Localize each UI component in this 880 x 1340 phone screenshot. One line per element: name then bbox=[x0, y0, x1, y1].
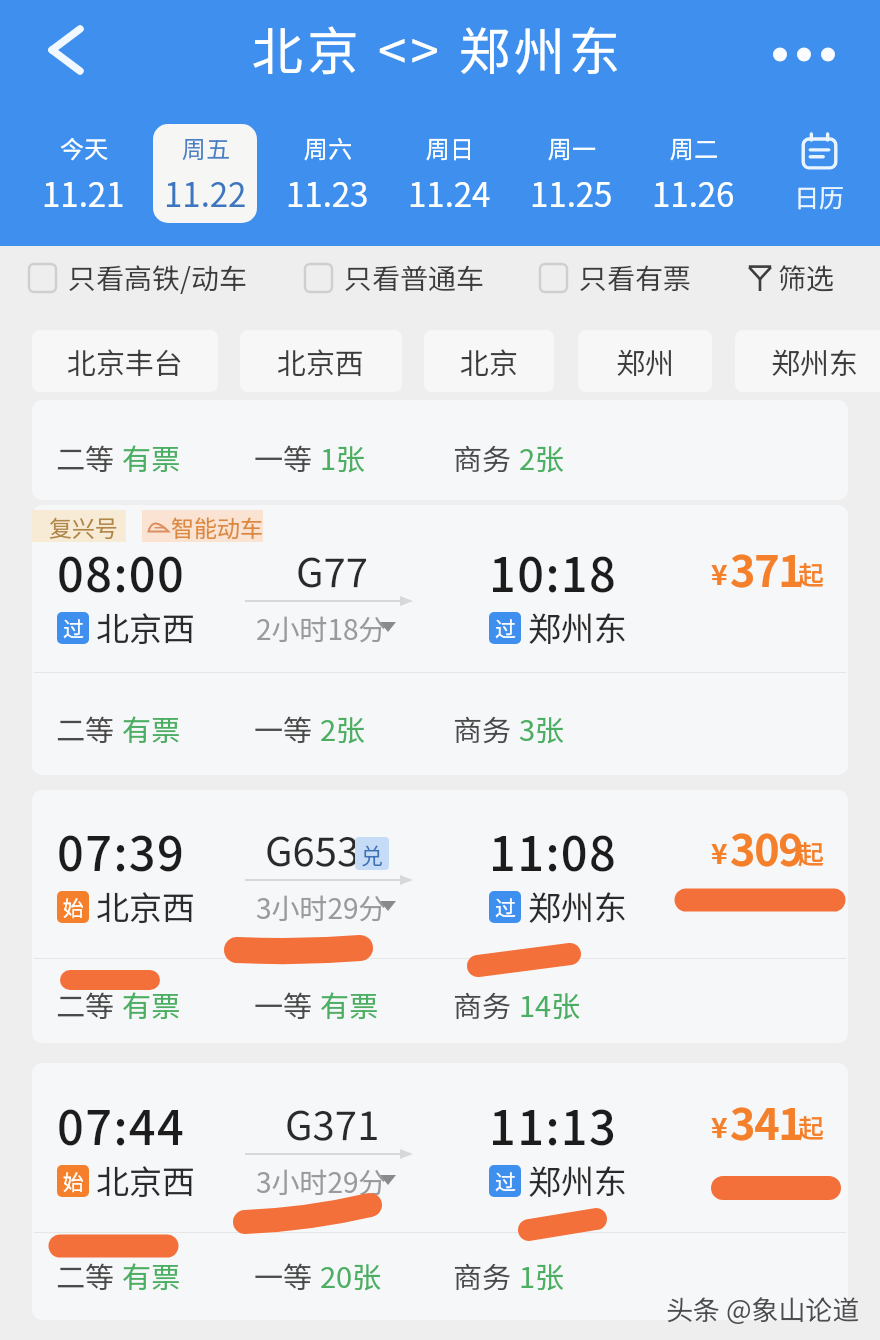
staticText: 今天 bbox=[60, 130, 108, 165]
staticText: 只看有票 bbox=[579, 257, 692, 298]
staticText: 过 bbox=[63, 613, 84, 643]
staticText: 2小时18分 bbox=[256, 608, 387, 649]
staticText: 3小时29分 bbox=[256, 1161, 387, 1202]
staticText: G77 bbox=[296, 541, 368, 599]
staticText: 只看高铁/动车 bbox=[68, 257, 247, 298]
button[interactable]: 郑州东 bbox=[735, 330, 880, 392]
staticText: 1张 bbox=[320, 436, 366, 478]
staticText: 周六 bbox=[304, 130, 352, 165]
staticText: 11.23 bbox=[286, 169, 369, 217]
button[interactable]: 周一 bbox=[519, 124, 623, 223]
button[interactable]: 只看高铁/动车 bbox=[28, 250, 207, 310]
staticText: G371 bbox=[285, 1094, 380, 1152]
button[interactable]: 北京 bbox=[424, 330, 554, 392]
staticText: 07:39 bbox=[57, 816, 186, 884]
staticText: 3小时29分 bbox=[256, 887, 387, 928]
staticText: 北京西 bbox=[96, 1156, 195, 1204]
button[interactable]: 郑州 bbox=[578, 330, 712, 392]
button[interactable] bbox=[32, 505, 848, 775]
staticText: 二等 bbox=[56, 1254, 115, 1296]
staticText: 有票 bbox=[122, 1254, 181, 1296]
staticText: 周日 bbox=[426, 130, 474, 165]
staticText: 2张 bbox=[519, 436, 565, 478]
button[interactable] bbox=[32, 790, 848, 1043]
staticText: 有票 bbox=[122, 983, 181, 1025]
staticText: 10:18 bbox=[489, 537, 618, 605]
staticText: 起 bbox=[798, 1108, 825, 1146]
staticText: 商务 bbox=[453, 707, 512, 749]
staticText: 11.26 bbox=[652, 169, 735, 217]
staticText: 郑州 bbox=[616, 340, 675, 382]
staticText: 371 bbox=[730, 537, 803, 599]
staticText: 始 bbox=[63, 892, 84, 922]
staticText: 周二 bbox=[670, 130, 718, 165]
button[interactable]: Back bbox=[22, 6, 110, 94]
button[interactable]: 只看普通车 bbox=[304, 250, 445, 310]
staticText: 北京 bbox=[460, 340, 519, 382]
staticText: ¥ bbox=[711, 553, 728, 594]
button[interactable]: 北京丰台 bbox=[32, 330, 218, 392]
staticText: 2张 bbox=[320, 707, 366, 749]
button[interactable]: Calendar bbox=[767, 124, 871, 223]
button[interactable]: 周日 bbox=[397, 124, 501, 223]
staticText: 郑州东 bbox=[771, 340, 859, 382]
staticText: 头条 @象山论道 bbox=[666, 1289, 860, 1328]
staticText: 有票 bbox=[320, 983, 379, 1025]
staticText: 商务 bbox=[453, 436, 512, 478]
staticText: 商务 bbox=[453, 1254, 512, 1296]
staticText: 一等 bbox=[254, 707, 313, 749]
button[interactable]: 北京西 bbox=[240, 330, 402, 392]
staticText: 1张 bbox=[519, 1254, 565, 1296]
staticText: 一等 bbox=[254, 436, 313, 478]
staticText: 309 bbox=[730, 816, 803, 878]
staticText: 08:00 bbox=[57, 537, 186, 605]
staticText: 二等 bbox=[56, 983, 115, 1025]
staticText: 只看普通车 bbox=[344, 257, 485, 298]
staticText: 郑州东 bbox=[528, 1156, 627, 1204]
staticText: 一等 bbox=[254, 983, 313, 1025]
staticText: 二等 bbox=[56, 707, 115, 749]
staticText: 07:44 bbox=[57, 1090, 186, 1158]
staticText: 兑 bbox=[361, 838, 384, 870]
staticText: 日历 bbox=[794, 178, 845, 214]
staticText: 3张 bbox=[519, 707, 565, 749]
staticText: 有票 bbox=[122, 707, 181, 749]
staticText: 智能动车 bbox=[171, 510, 263, 543]
staticText: 起 bbox=[798, 834, 825, 872]
staticText: 过 bbox=[495, 892, 516, 922]
button[interactable]: 周二 bbox=[641, 124, 745, 223]
staticText: 11.21 bbox=[42, 169, 125, 217]
staticText: 11:13 bbox=[489, 1090, 618, 1158]
staticText: 北京西 bbox=[96, 882, 195, 930]
staticText: 复兴号 bbox=[49, 510, 118, 543]
staticText: ¥ bbox=[711, 1106, 728, 1147]
button[interactable] bbox=[32, 400, 848, 500]
staticText: ¥ bbox=[711, 832, 728, 873]
staticText: 郑州东 bbox=[528, 603, 627, 651]
button[interactable]: 周六 bbox=[275, 124, 379, 223]
staticText: 11.24 bbox=[408, 169, 491, 217]
button[interactable]: More options bbox=[752, 10, 856, 98]
staticText: 北京 <> 郑州东 bbox=[252, 11, 625, 85]
staticText: 一等 bbox=[254, 1254, 313, 1296]
staticText: 起 bbox=[798, 555, 825, 593]
button[interactable]: 今天 bbox=[31, 124, 135, 223]
staticText: 北京西 bbox=[96, 603, 195, 651]
staticText: 北京丰台 bbox=[67, 340, 184, 382]
button[interactable]: 只看有票 bbox=[539, 250, 652, 310]
button[interactable] bbox=[32, 1063, 848, 1320]
button[interactable]: 筛选 bbox=[738, 250, 850, 310]
staticText: 北京西 bbox=[277, 340, 365, 382]
staticText: 11.25 bbox=[530, 169, 613, 217]
staticText: 郑州东 bbox=[528, 882, 627, 930]
staticText: 20张 bbox=[320, 1254, 382, 1296]
staticText: G653 bbox=[265, 820, 360, 878]
staticText: 341 bbox=[730, 1090, 803, 1152]
staticText: 周一 bbox=[548, 130, 596, 165]
staticText: 二等 bbox=[56, 436, 115, 478]
button[interactable]: 周五 bbox=[153, 124, 257, 223]
staticText: 过 bbox=[495, 1166, 516, 1196]
staticText: 筛选 bbox=[778, 257, 835, 298]
staticText: 商务 bbox=[453, 983, 512, 1025]
staticText: 有票 bbox=[122, 436, 181, 478]
